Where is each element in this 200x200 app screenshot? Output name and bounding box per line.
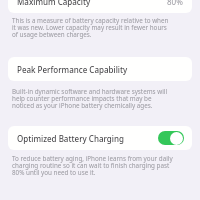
staticText: 80% <box>167 0 183 7</box>
button[interactable]: Peak Performance Capability <box>8 57 192 81</box>
staticText: Maximum Capacity <box>17 0 91 7</box>
button[interactable]: Optimized Battery Charging toggle, on <box>158 131 184 145</box>
staticText: Built-in dynamic software and hardware s… <box>12 87 192 110</box>
staticText: Optimized Battery Charging <box>17 133 124 144</box>
staticText: This is a measure of battery capacity re… <box>12 16 192 39</box>
staticText: Peak Performance Capability <box>17 64 128 75</box>
staticText: To reduce battery aging, iPhone learns f… <box>12 154 192 177</box>
button[interactable]: Optimized Battery Charging <box>8 126 192 150</box>
button[interactable]: Maximum Capacity <box>8 0 192 13</box>
